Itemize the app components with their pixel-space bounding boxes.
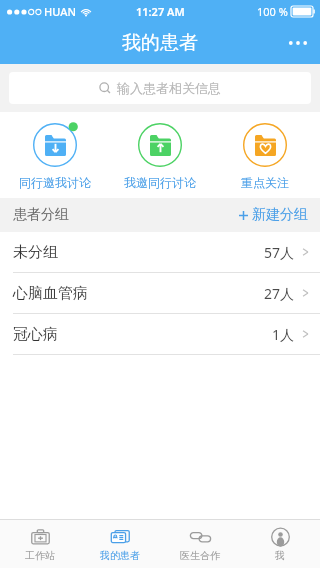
button[interactable]: 新建分组 — [238, 198, 308, 232]
button[interactable]: 未分组 — [0, 232, 320, 273]
staticText: 新建分组 — [252, 206, 308, 224]
staticText: 未分组 — [13, 243, 58, 262]
button[interactable]: 医生合作 — [160, 520, 240, 568]
button[interactable]: 我邀同行讨论 — [110, 121, 210, 190]
staticText: 11:27 AM — [136, 4, 185, 19]
button[interactable]: 同行邀我讨论 — [5, 121, 105, 190]
staticText: 57人 — [264, 243, 295, 262]
button[interactable]: 工作站 — [0, 520, 80, 568]
staticText: HUAN — [44, 4, 76, 19]
staticText: 同行邀我讨论 — [19, 175, 91, 190]
staticText: 我 — [275, 549, 285, 562]
button[interactable]: 心脑血管病 — [0, 273, 320, 314]
staticText: 患者分组 — [13, 206, 69, 224]
staticText: 输入患者相关信息 — [117, 80, 221, 96]
button[interactable]: 重点关注 — [215, 121, 315, 190]
button[interactable]: 我 — [240, 520, 320, 568]
staticText: 心脑血管病 — [13, 284, 88, 303]
staticText: 1人 — [272, 325, 295, 344]
staticText: 27人 — [264, 284, 295, 303]
staticText: 工作站 — [25, 549, 55, 562]
button[interactable]: 输入患者相关信息 — [9, 72, 311, 104]
staticText: 重点关注 — [241, 175, 289, 190]
staticText: 冠心病 — [13, 325, 58, 344]
button[interactable]: 冠心病 — [0, 314, 320, 355]
staticText: 医生合作 — [180, 549, 220, 562]
staticText: 100 % — [257, 4, 288, 19]
staticText: 我邀同行讨论 — [124, 175, 196, 190]
button[interactable]: More options — [276, 22, 320, 64]
staticText: 我的患者 — [122, 31, 198, 55]
staticText: 我的患者 — [100, 549, 140, 562]
button[interactable]: 我的患者 — [80, 520, 160, 568]
